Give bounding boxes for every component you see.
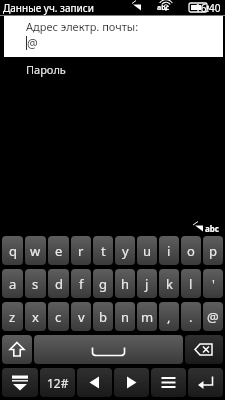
button[interactable]: i (159, 236, 179, 265)
button[interactable]: a (2, 269, 23, 298)
button[interactable]: Backspace (185, 335, 223, 364)
button[interactable]: m (137, 302, 157, 331)
button[interactable]: b (93, 302, 113, 331)
button[interactable]: u (137, 236, 157, 265)
button[interactable]: z (2, 302, 23, 331)
staticText: x (32, 308, 39, 326)
staticText: g (99, 275, 107, 293)
staticText: d (55, 275, 63, 293)
staticText: @ (27, 35, 38, 51)
staticText: 16:40 (195, 1, 221, 15)
button[interactable]: h (115, 269, 135, 298)
button[interactable]: Hide keyboard (2, 368, 38, 397)
staticText: t (101, 242, 106, 260)
button[interactable]: Space (34, 335, 183, 364)
button[interactable]: o (181, 236, 201, 265)
staticText: q (9, 242, 17, 260)
button[interactable]: . (181, 302, 201, 331)
staticText: . (189, 308, 193, 326)
staticText: r (78, 242, 84, 260)
staticText: e (55, 242, 63, 260)
button[interactable]: l (181, 269, 201, 298)
staticText: o (187, 242, 195, 260)
staticText: Адрес электр. почты: (26, 19, 139, 34)
button[interactable]: ' (203, 269, 223, 298)
staticText: p (209, 242, 217, 260)
staticText: abc (205, 223, 219, 234)
button[interactable]: p (203, 236, 223, 265)
staticText: k (166, 275, 173, 293)
button[interactable]: , (159, 302, 179, 331)
staticText: h (121, 275, 130, 293)
button[interactable]: Menu (151, 368, 186, 397)
staticText: c (55, 308, 62, 326)
button[interactable]: s (25, 269, 46, 298)
button[interactable]: x (25, 302, 46, 331)
button[interactable]: n (115, 302, 135, 331)
button[interactable]: Адрес электр. почты: (4, 16, 223, 57)
button[interactable]: q (2, 236, 23, 265)
staticText: Данные уч. записи (3, 1, 94, 15)
staticText: s (32, 275, 39, 293)
staticText: m (141, 308, 154, 326)
staticText: 12# (47, 375, 69, 391)
button[interactable]: t (93, 236, 113, 265)
staticText: n (121, 308, 130, 326)
staticText: abc (157, 3, 170, 13)
button[interactable]: j (137, 269, 157, 298)
staticText: b (99, 308, 107, 326)
button[interactable]: @ (203, 302, 223, 331)
staticText: f (79, 275, 84, 293)
staticText: i (167, 242, 171, 260)
staticText: a (9, 275, 17, 293)
staticText: w (30, 242, 41, 260)
staticText: y (122, 242, 129, 260)
staticText: Пароль (26, 62, 66, 77)
staticText: @ (207, 308, 219, 326)
button[interactable]: g (93, 269, 113, 298)
button[interactable]: c (48, 302, 69, 331)
staticText: z (9, 308, 16, 326)
button[interactable]: Right (114, 368, 149, 397)
button[interactable]: e (48, 236, 69, 265)
button[interactable]: Shift (2, 335, 32, 364)
button[interactable]: Enter (188, 368, 223, 397)
button[interactable]: w (25, 236, 46, 265)
button[interactable]: y (115, 236, 135, 265)
button[interactable]: k (159, 269, 179, 298)
button[interactable]: Left (77, 368, 112, 397)
button[interactable]: Пароль (0, 57, 225, 81)
button[interactable]: v (71, 302, 91, 331)
staticText: v (78, 308, 85, 326)
staticText: j (145, 275, 149, 293)
staticText: ' (212, 275, 215, 293)
button[interactable]: r (71, 236, 91, 265)
staticText: u (143, 242, 152, 260)
button[interactable]: f (71, 269, 91, 298)
button[interactable]: d (48, 269, 69, 298)
staticText: l (189, 275, 193, 293)
button[interactable]: 12# (40, 368, 75, 397)
staticText: , (167, 308, 171, 326)
